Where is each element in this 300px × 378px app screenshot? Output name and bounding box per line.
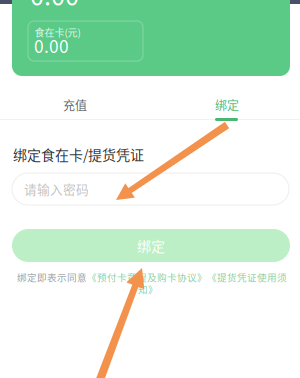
staticText: 绑定食在卡/提货凭证 (13, 144, 144, 164)
staticText: 绑定即表示同意 (17, 270, 87, 284)
staticText: 《预付卡章程及购卡协议》 (87, 270, 207, 284)
button[interactable]: 绑定 (12, 229, 290, 262)
staticText: 0.00 (34, 33, 69, 58)
button[interactable]: 绑定 (152, 91, 300, 119)
staticText: 0.00 (30, 0, 79, 13)
staticText: 知》 (138, 282, 158, 296)
staticText: 充值 (63, 96, 87, 114)
staticText: 绑定 (215, 96, 239, 114)
staticText: 请输入密码 (24, 180, 89, 198)
button[interactable]: 充值 (0, 91, 150, 119)
button[interactable]: 知》 (0, 283, 298, 295)
button[interactable]: 《预付卡章程及购卡协议》 (87, 270, 207, 284)
staticText: 食在卡(元) (34, 25, 80, 39)
button[interactable]: 《提货凭证使用须 (207, 270, 287, 284)
staticText: 绑定 (137, 235, 165, 256)
staticText: 《提货凭证使用须 (207, 270, 287, 284)
